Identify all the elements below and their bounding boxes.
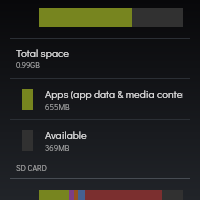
- staticText: 369MB: [45, 143, 70, 153]
- staticText: Available: [45, 128, 87, 142]
- staticText: 0.99GB: [16, 60, 40, 70]
- staticText: Apps (app data & media content): [45, 87, 183, 101]
- staticText: 655MB: [45, 102, 70, 112]
- button[interactable]: Total space: [0, 39, 200, 78]
- staticText: SD CARD: [16, 163, 47, 173]
- staticText: Total space: [16, 45, 70, 59]
- button[interactable]: Available: [0, 120, 200, 160]
- button[interactable]: Apps (app data & media content): [0, 79, 200, 119]
